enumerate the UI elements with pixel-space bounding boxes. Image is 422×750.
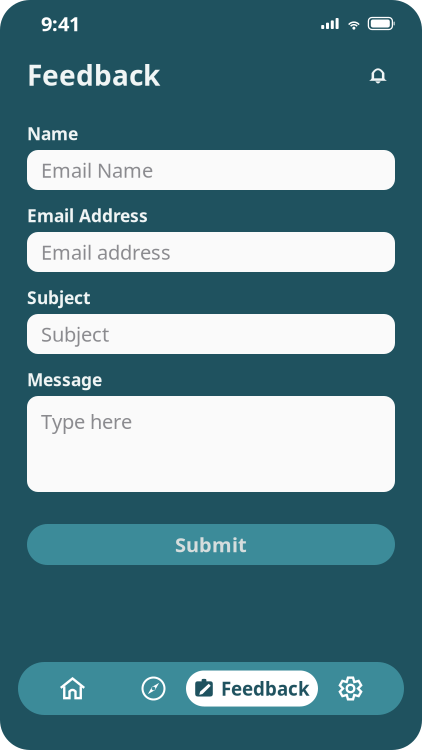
staticText: Subject <box>41 321 109 347</box>
staticText: Email address <box>41 239 171 265</box>
button[interactable]: Notifications <box>361 58 395 92</box>
staticText: Type here <box>41 408 132 435</box>
button[interactable]: Email address <box>27 232 395 272</box>
button[interactable]: Explore <box>130 662 177 715</box>
staticText: Feedback <box>27 56 160 94</box>
staticText: Name <box>27 122 78 145</box>
staticText: Submit <box>175 531 247 558</box>
staticText: Subject <box>27 286 91 309</box>
button[interactable]: Settings <box>327 662 374 715</box>
staticText: 9:41 <box>41 10 80 37</box>
staticText: Email Address <box>27 204 148 227</box>
staticText: Email Name <box>41 157 153 183</box>
button[interactable]: Subject <box>27 314 395 354</box>
button[interactable]: Submit <box>27 524 395 565</box>
staticText: Feedback <box>221 676 310 701</box>
staticText: Message <box>27 368 102 391</box>
button[interactable]: Feedback <box>186 670 318 706</box>
button[interactable]: Home <box>49 662 96 715</box>
button[interactable]: Type here <box>27 396 395 492</box>
button[interactable]: Email Name <box>27 150 395 190</box>
